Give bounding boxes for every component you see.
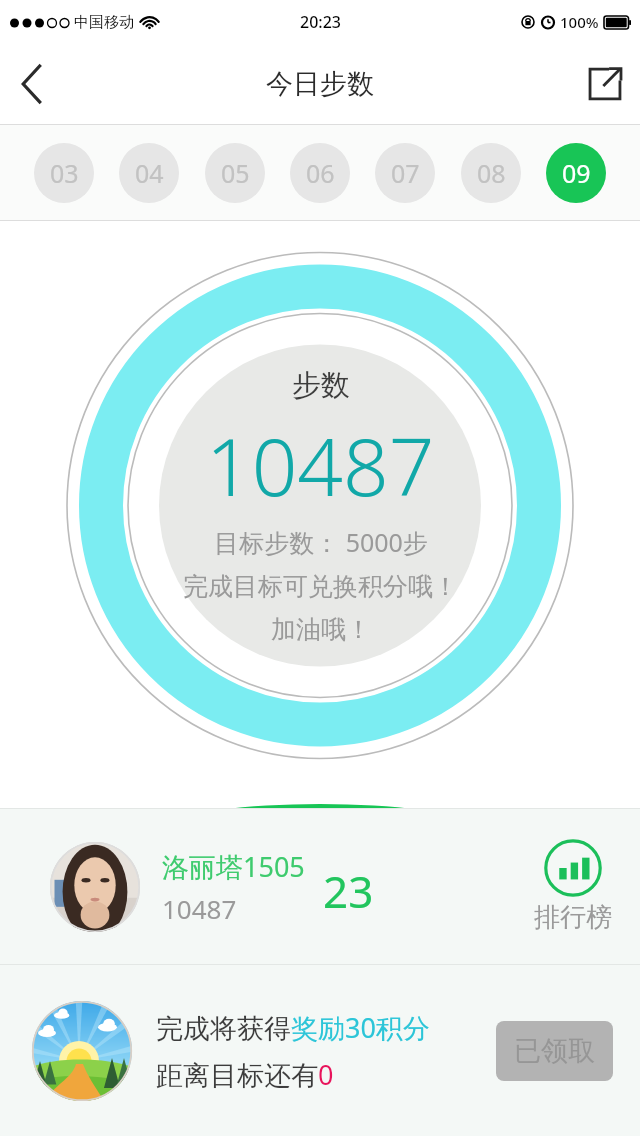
staticText: 09	[562, 156, 591, 190]
staticText: 完成目标可兑换积分哦！	[183, 571, 458, 602]
staticText: 距离目标还有0	[156, 1056, 334, 1093]
staticText: 步数	[292, 367, 350, 404]
staticText: 07	[391, 156, 420, 190]
button[interactable]: 08	[461, 143, 521, 203]
button[interactable]: Back	[0, 52, 64, 116]
button[interactable]: 07	[375, 143, 435, 203]
staticText: 06	[306, 156, 335, 190]
staticText: 中国移动	[74, 13, 134, 32]
staticText: 05	[221, 156, 250, 190]
button[interactable]: 已领取	[496, 1021, 613, 1081]
button[interactable]: Share	[570, 49, 640, 119]
staticText: 洛丽塔1505	[162, 848, 305, 885]
staticText: 完成将获得奖励30积分	[156, 1009, 430, 1046]
button[interactable]: 09	[546, 143, 606, 203]
staticText: 今日步数	[266, 67, 374, 101]
staticText: 08	[477, 156, 506, 190]
staticText: 排行榜	[534, 901, 612, 934]
button[interactable]: 05	[205, 143, 265, 203]
staticText: 10487	[162, 891, 237, 926]
button[interactable]: 04	[119, 143, 179, 203]
staticText: 加油哦！	[271, 614, 371, 645]
staticText: 已领取	[514, 1034, 595, 1068]
staticText: 目标步数： 5000步	[214, 525, 428, 559]
staticText: 10487	[206, 410, 435, 519]
staticText: 23	[323, 861, 374, 921]
button[interactable]: 03	[34, 143, 94, 203]
staticText: 03	[50, 156, 79, 190]
staticText: 04	[135, 156, 164, 190]
button[interactable]: 洛丽塔1505	[0, 809, 640, 964]
button[interactable]: 06	[290, 143, 350, 203]
button[interactable]: 排行榜	[534, 839, 612, 934]
staticText: 20:23	[300, 11, 341, 33]
staticText: 100%	[560, 12, 599, 32]
